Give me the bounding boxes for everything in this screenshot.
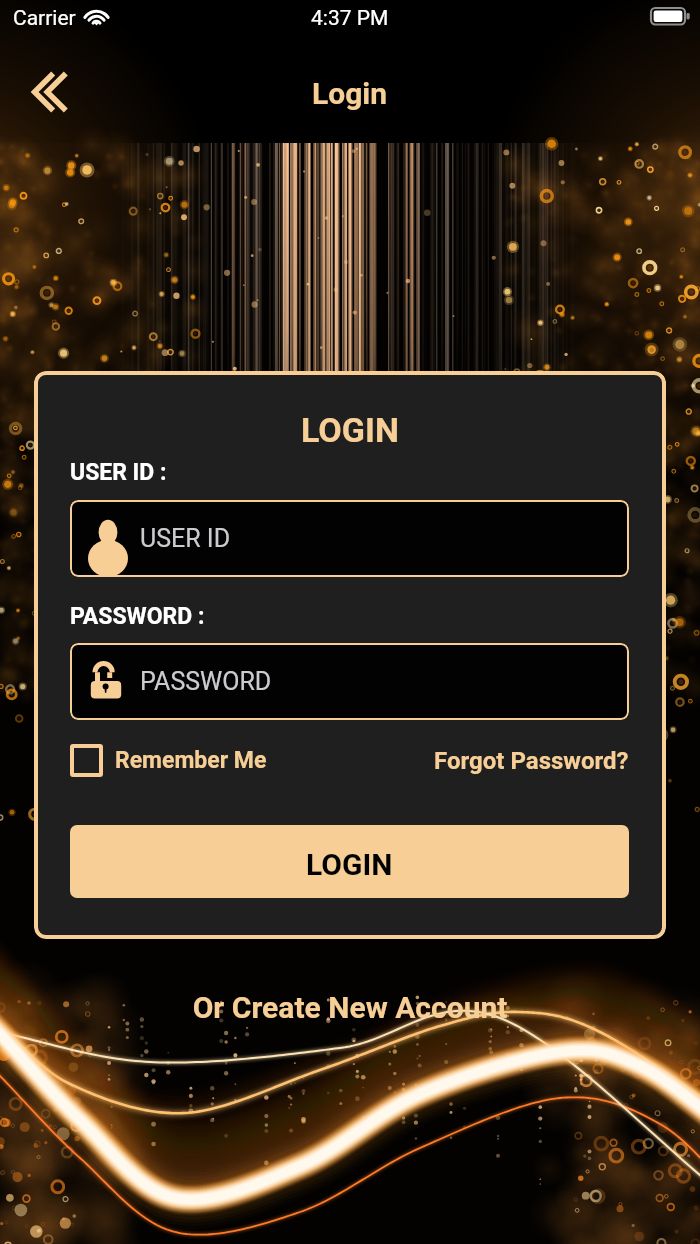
button[interactable]: LOGIN	[70, 825, 629, 898]
button[interactable]: USER ID	[70, 500, 629, 577]
staticText: Remember Me	[115, 747, 267, 774]
staticText: Login	[312, 76, 388, 111]
button[interactable]: Remember Me	[70, 744, 267, 777]
staticText: LOGIN	[306, 847, 393, 882]
staticText: PASSWORD	[140, 667, 272, 696]
button[interactable]: Forgot Password?	[434, 747, 629, 775]
staticText: LOGIN	[301, 410, 399, 450]
staticText: Carrier	[13, 6, 76, 31]
staticText: USER ID	[140, 524, 231, 553]
staticText: PASSWORD :	[70, 603, 205, 630]
button[interactable]: Back	[12, 58, 80, 126]
button[interactable]: PASSWORD	[70, 643, 629, 720]
button[interactable]: Or Create New Account	[0, 990, 700, 1025]
staticText: USER ID :	[70, 459, 167, 486]
staticText: 4:37 PM	[311, 6, 389, 31]
